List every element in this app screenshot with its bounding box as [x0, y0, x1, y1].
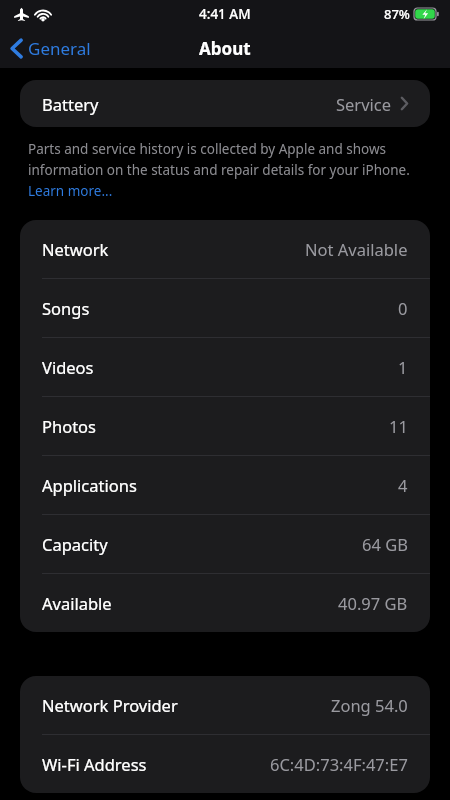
staticText: Capacity	[42, 533, 108, 555]
button[interactable]: General	[0, 33, 103, 64]
staticText: Applications	[42, 474, 137, 496]
staticText: 40.97 GB	[338, 592, 408, 614]
staticText: 64 GB	[362, 533, 408, 555]
staticText: General	[28, 37, 91, 60]
staticText: Songs	[42, 297, 90, 319]
staticText: Available	[42, 592, 112, 614]
button[interactable]: Wi-Fi Address	[20, 735, 430, 793]
button[interactable]: Applications	[20, 456, 430, 514]
staticText: Wi-Fi Address	[42, 753, 147, 775]
button[interactable]: Songs	[20, 279, 430, 337]
button[interactable]: Network Provider	[20, 676, 430, 734]
staticText: Network Provider	[42, 694, 178, 716]
staticText: Photos	[42, 415, 97, 437]
staticText: 11	[389, 415, 408, 437]
staticText: 1	[398, 356, 408, 378]
button[interactable]: Network	[20, 220, 430, 278]
other: Open Battery details	[401, 97, 408, 110]
staticText: Zong 54.0	[331, 694, 408, 716]
staticText: Network	[42, 238, 109, 260]
staticText: Videos	[42, 356, 94, 378]
button[interactable]: Battery	[20, 80, 430, 127]
button[interactable]: Videos	[20, 338, 430, 396]
staticText: Service	[336, 93, 392, 115]
staticText: Battery	[42, 93, 99, 115]
button[interactable]: Capacity	[20, 515, 430, 573]
staticText: Parts and service history is collected b…	[28, 140, 424, 200]
staticText: 4:41 AM	[199, 5, 251, 23]
button[interactable]: Available	[20, 574, 430, 632]
staticText: Not Available	[305, 238, 408, 260]
staticText: 6C:4D:73:4F:47:E7	[270, 753, 408, 775]
staticText: 87%	[384, 5, 410, 23]
staticText: About	[199, 37, 251, 60]
staticText: 0	[398, 297, 408, 319]
staticText: 4	[398, 474, 408, 496]
button[interactable]: Photos	[20, 397, 430, 455]
